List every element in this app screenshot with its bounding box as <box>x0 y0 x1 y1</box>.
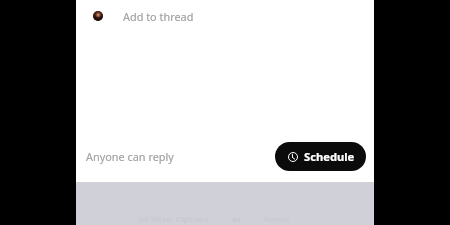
button[interactable]: Anyone can reply <box>81 143 179 169</box>
staticText: Add to thread <box>123 9 194 24</box>
staticText: Schedule <box>304 149 355 164</box>
button[interactable]: Profile picture <box>76 0 374 32</box>
other: Profile picture <box>93 11 103 21</box>
staticText: Anyone can reply <box>86 149 174 164</box>
button[interactable]: Schedule <box>275 142 366 171</box>
other: Schedule <box>288 152 298 162</box>
